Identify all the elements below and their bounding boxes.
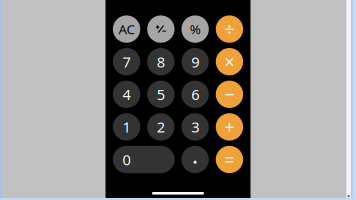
staticText: 8 [157, 52, 165, 71]
button[interactable]: 4 [113, 81, 140, 108]
staticText: × [224, 50, 234, 73]
staticText: 0 [122, 150, 130, 169]
button[interactable]: 1 [113, 113, 140, 141]
staticText: − [224, 83, 234, 106]
button[interactable]: 2 [147, 113, 174, 141]
button[interactable]: 8 [147, 48, 174, 75]
button[interactable]: % [181, 15, 209, 43]
button[interactable]: AC [113, 15, 140, 43]
staticText: + [224, 115, 234, 138]
button[interactable]: 7 [113, 48, 140, 75]
button[interactable]: 9 [181, 48, 209, 75]
button[interactable]: = [216, 146, 243, 173]
button[interactable]: 0 [113, 146, 174, 173]
staticText: 6 [191, 85, 199, 104]
button[interactable]: + [216, 113, 243, 141]
button[interactable]: 6 [181, 81, 209, 108]
button[interactable]: Decimal point [181, 146, 209, 173]
button[interactable]: Plus minus [147, 15, 174, 43]
button[interactable]: 3 [181, 113, 209, 141]
button[interactable]: ÷ [216, 15, 243, 43]
button[interactable]: − [216, 81, 243, 108]
button[interactable]: × [216, 48, 243, 75]
staticText: 4 [122, 85, 130, 104]
staticText: % [190, 20, 201, 38]
staticText: = [224, 148, 234, 171]
staticText: 7 [122, 52, 130, 71]
staticText: 3 [191, 117, 199, 137]
button[interactable]: Scroll down [346, 193, 351, 200]
staticText: 2 [157, 117, 165, 137]
staticText: ÷ [224, 18, 234, 41]
button[interactable]: 5 [147, 81, 174, 108]
staticText: 9 [191, 52, 199, 71]
staticText: AC [118, 20, 134, 38]
staticText: 1 [122, 117, 130, 137]
staticText: 5 [157, 85, 165, 104]
